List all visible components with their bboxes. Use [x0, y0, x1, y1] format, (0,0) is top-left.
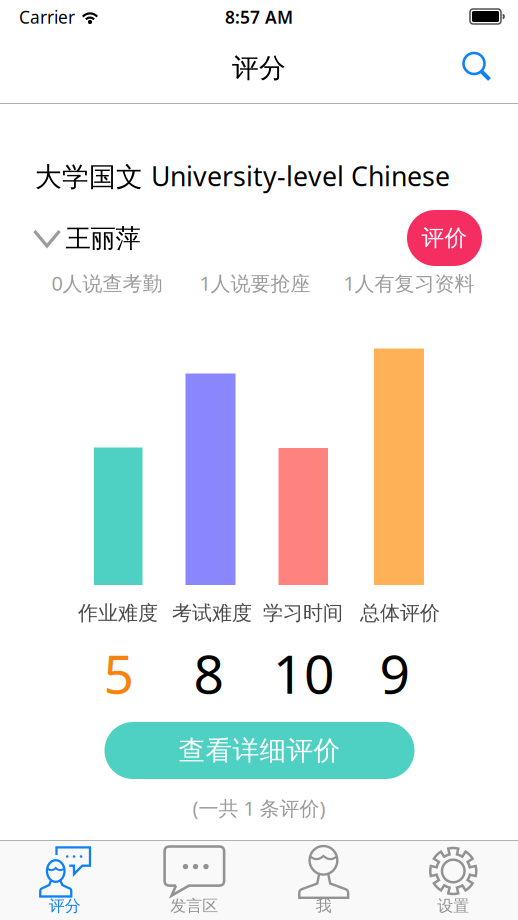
- staticText: 1人有复习资料: [343, 270, 474, 296]
- staticText: 王丽萍: [65, 223, 140, 254]
- staticText: 发言区: [170, 896, 218, 916]
- staticText: (一共 1 条评价): [192, 795, 325, 821]
- staticText: 8: [193, 638, 224, 708]
- staticText: Carrier: [19, 5, 75, 28]
- button[interactable]: 设置: [388, 840, 518, 920]
- staticText: 10: [273, 638, 335, 708]
- button[interactable]: 发言区: [129, 840, 259, 920]
- staticText: 评分: [232, 52, 286, 84]
- staticText: 评分: [49, 896, 81, 916]
- staticText: 9: [379, 638, 410, 708]
- staticText: 作业难度: [78, 601, 158, 625]
- button[interactable]: 评分: [0, 840, 129, 920]
- button[interactable]: Select teacher: [30, 221, 142, 255]
- staticText: 查看详细评价: [178, 734, 340, 767]
- staticText: 8:57 AM: [225, 5, 293, 28]
- staticText: 评价: [421, 224, 467, 252]
- staticText: 设置: [437, 896, 469, 916]
- staticText: 大学国文 University-level Chinese: [35, 158, 450, 194]
- staticText: 我: [316, 896, 332, 916]
- staticText: 考试难度: [172, 601, 252, 625]
- button[interactable]: 我: [259, 840, 388, 920]
- button[interactable]: 评价: [407, 210, 482, 266]
- staticText: 1人说要抢座: [199, 270, 310, 296]
- staticText: 学习时间: [263, 601, 343, 625]
- staticText: 0人说查考勤: [51, 270, 162, 296]
- button[interactable]: Search: [461, 51, 495, 85]
- staticText: 总体评价: [360, 601, 440, 625]
- button[interactable]: 查看详细评价: [104, 722, 414, 779]
- staticText: 5: [103, 638, 134, 708]
